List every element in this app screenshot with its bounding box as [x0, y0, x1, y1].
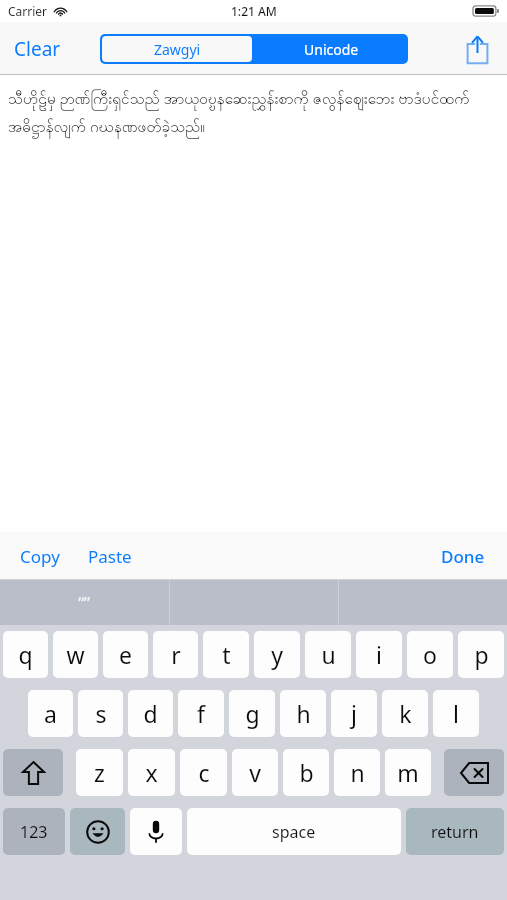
button[interactable]: v [232, 749, 278, 796]
staticText: a [44, 698, 57, 729]
button[interactable]: b [283, 749, 329, 796]
staticText: m [397, 757, 419, 788]
staticText: z [94, 757, 105, 788]
staticText: Carrier [8, 3, 48, 19]
staticText: space [272, 821, 316, 843]
staticText: x [145, 757, 158, 788]
button[interactable]: y [254, 631, 300, 678]
button[interactable]: c [180, 749, 227, 796]
staticText: “” [78, 591, 91, 614]
button[interactable]: w [53, 631, 98, 678]
button[interactable]: z [76, 749, 123, 796]
button[interactable]: Emoji [70, 808, 125, 855]
staticText: e [119, 639, 132, 670]
staticText: j [351, 698, 357, 729]
staticText: y [271, 639, 283, 670]
staticText: Done [441, 545, 485, 568]
button[interactable]: n [334, 749, 380, 796]
staticText: Unicode [304, 40, 359, 59]
button[interactable]: q [3, 631, 48, 678]
button[interactable]: d [128, 690, 173, 737]
staticText: c [198, 757, 210, 788]
staticText: d [143, 698, 158, 729]
button[interactable]: Paste [82, 539, 138, 574]
staticText: s [95, 698, 107, 729]
staticText: b [299, 757, 314, 788]
button[interactable]: 123 [3, 808, 65, 855]
button[interactable]: space [187, 808, 401, 855]
button[interactable]: x [128, 749, 175, 796]
staticText: g [245, 698, 260, 729]
staticText: Clear [14, 36, 61, 62]
button[interactable]: u [305, 631, 351, 678]
staticText: p [474, 639, 489, 670]
button[interactable]: p [458, 631, 504, 678]
button[interactable]: Delete [444, 749, 504, 796]
staticText: k [399, 698, 412, 729]
staticText: Paste [88, 545, 132, 568]
staticText: t [222, 639, 231, 670]
staticText: return [431, 821, 479, 843]
staticText: o [423, 639, 437, 670]
staticText: r [171, 639, 181, 670]
button[interactable]: s [78, 690, 123, 737]
button[interactable]: Unicode [254, 34, 408, 64]
button[interactable]: Dictation [130, 808, 182, 855]
staticText: သီဟိုဠ်မှ ဉာဏ်ကြီးရှင်သည် အာယုဝဎ္ဎနဆေးညွ… [8, 87, 499, 139]
staticText: w [66, 639, 85, 670]
button[interactable]: Shift [3, 749, 63, 796]
staticText: 1:21 AM [231, 3, 277, 19]
button[interactable]: o [407, 631, 453, 678]
button[interactable]: Done [435, 539, 491, 574]
button[interactable]: a [28, 690, 73, 737]
button[interactable]: g [229, 690, 275, 737]
button[interactable]: Copy [14, 539, 66, 574]
button[interactable]: j [331, 690, 377, 737]
staticText: h [296, 698, 311, 729]
button[interactable]: Clear [0, 28, 75, 70]
staticText: u [321, 639, 336, 670]
button[interactable]: i [356, 631, 402, 678]
staticText: i [376, 639, 382, 670]
staticText: n [350, 757, 365, 788]
staticText: l [453, 698, 459, 729]
staticText: q [18, 639, 33, 670]
button[interactable]: Zawgyi [102, 36, 252, 62]
button[interactable]: l [433, 690, 479, 737]
staticText: v [249, 757, 261, 788]
button[interactable]: Share [457, 29, 497, 69]
button[interactable]: r [153, 631, 198, 678]
button[interactable]: t [203, 631, 249, 678]
staticText: Copy [20, 545, 60, 568]
staticText: f [197, 698, 205, 729]
button[interactable]: f [178, 690, 224, 737]
button[interactable]: return [406, 808, 504, 855]
button[interactable]: m [385, 749, 431, 796]
button[interactable]: “” [0, 580, 169, 625]
staticText: 123 [20, 821, 48, 843]
button[interactable]: h [280, 690, 326, 737]
button[interactable]: k [382, 690, 428, 737]
button[interactable]: e [103, 631, 148, 678]
staticText: Zawgyi [154, 40, 201, 59]
